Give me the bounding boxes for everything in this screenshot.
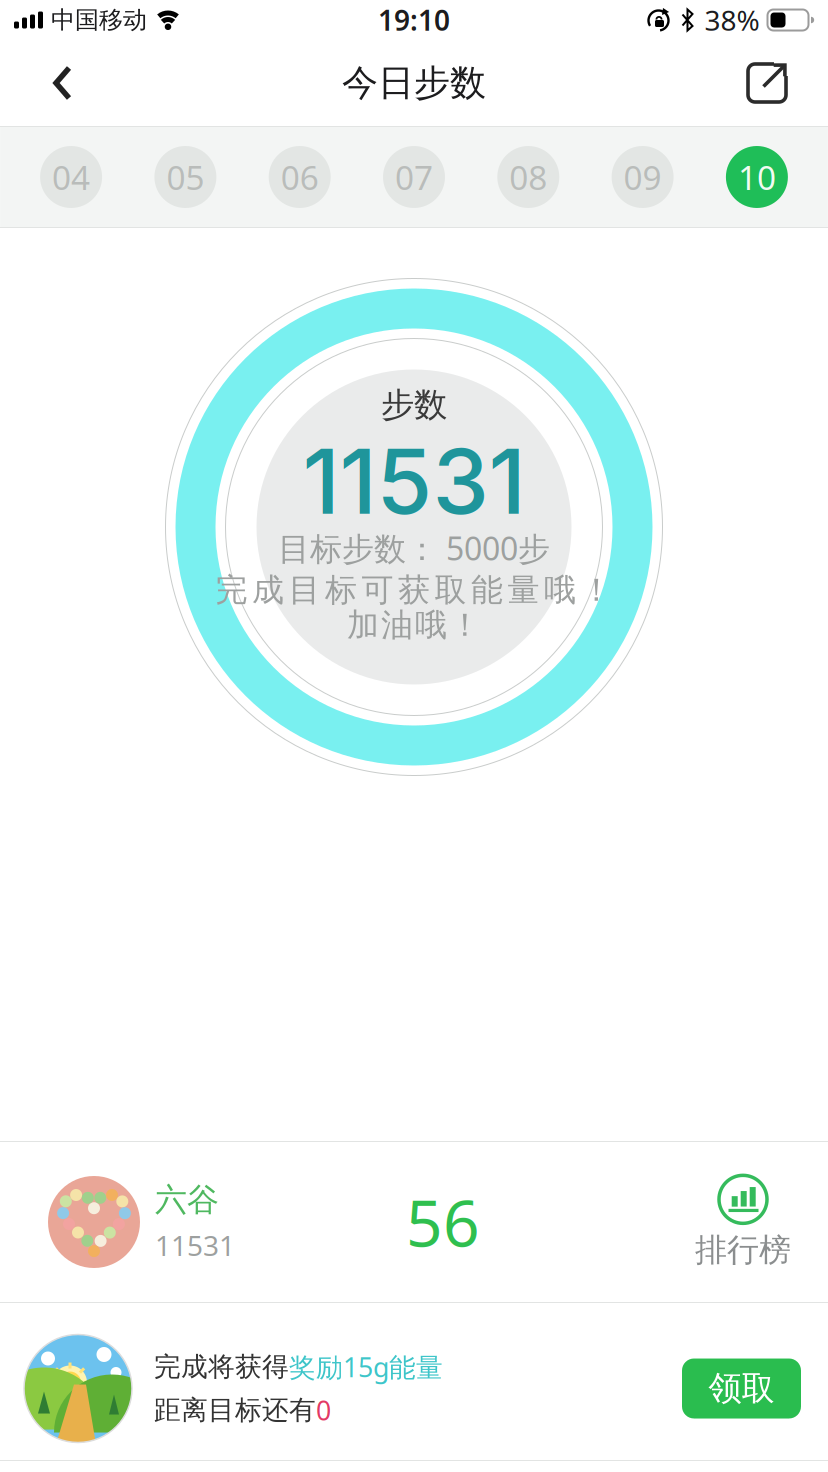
staticText: 排行榜: [695, 1230, 791, 1270]
button[interactable]: 09: [612, 146, 674, 208]
staticText: 07: [395, 155, 433, 199]
staticText: 08: [509, 155, 547, 199]
button[interactable]: 领取: [682, 1358, 801, 1418]
staticText: 04: [52, 155, 90, 199]
staticText: 中国移动: [51, 5, 147, 35]
button[interactable]: 排行榜: [695, 1174, 828, 1270]
staticText: 0: [316, 1392, 331, 1428]
staticText: 完成目标可获取能量哦！: [215, 570, 612, 610]
staticText: 10: [738, 155, 776, 199]
staticText: 奖励15g能量: [289, 1349, 443, 1384]
button[interactable]: [0, 65, 92, 100]
staticText: 56: [406, 1179, 480, 1264]
button[interactable]: 07: [383, 146, 445, 208]
staticText: 今日步数: [342, 61, 486, 105]
staticText: 目标步数： 5000步: [278, 527, 550, 569]
staticText: 09: [624, 155, 662, 199]
staticText: 38%: [704, 1, 759, 39]
staticText: 06: [281, 155, 319, 199]
staticText: 步数: [381, 384, 447, 425]
staticText: 距离目标还有: [154, 1394, 316, 1427]
staticText: 11531: [155, 1227, 235, 1264]
staticText: 11531: [302, 427, 525, 535]
button[interactable]: [746, 62, 828, 104]
staticText: 加油哦！: [347, 605, 481, 645]
button[interactable]: 05: [154, 146, 216, 208]
button[interactable]: 06: [269, 146, 331, 208]
staticText: 六谷: [155, 1180, 219, 1220]
staticText: 完成将获得: [154, 1350, 289, 1383]
button[interactable]: 08: [497, 146, 559, 208]
staticText: 19:10: [378, 1, 450, 39]
staticText: 领取: [708, 1368, 774, 1409]
staticText: 05: [166, 155, 204, 199]
button[interactable]: 10: [726, 146, 788, 208]
button[interactable]: 04: [40, 146, 102, 208]
